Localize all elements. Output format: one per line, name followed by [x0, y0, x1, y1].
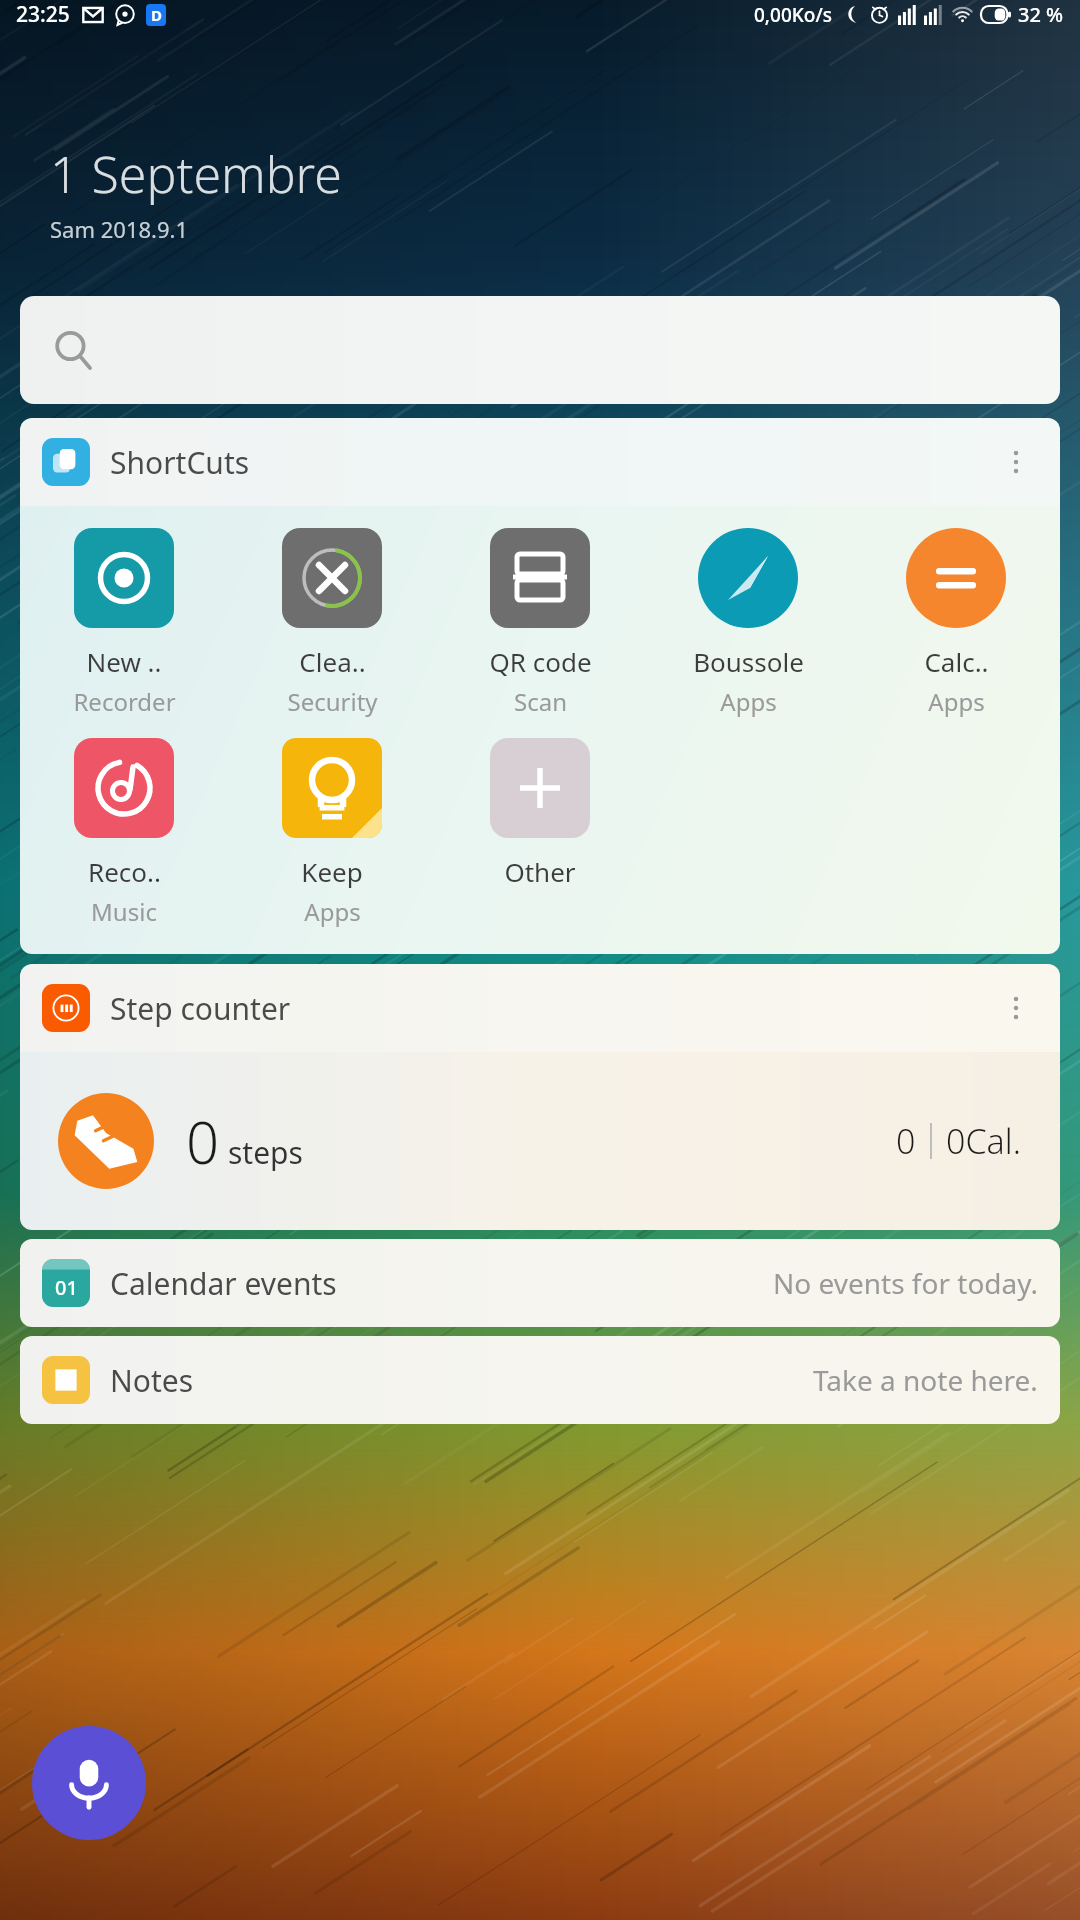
staticText: Boussole — [693, 644, 804, 679]
staticText: 0Cal. — [946, 1118, 1022, 1164]
button[interactable]: Reco.. — [20, 738, 228, 928]
button[interactable]: More options — [994, 986, 1038, 1030]
staticText: Scan — [514, 685, 567, 718]
staticText: 1 Septembre — [50, 140, 342, 208]
staticText: Apps — [304, 895, 361, 928]
staticText: Reco.. — [88, 854, 161, 889]
staticText: 0 — [186, 1102, 220, 1181]
staticText: D — [151, 5, 162, 25]
button[interactable]: More options — [994, 440, 1038, 484]
staticText: 0,00Ko/s — [754, 2, 832, 28]
button[interactable]: 0 — [20, 1052, 1060, 1230]
staticText: 23:25 — [16, 0, 70, 29]
staticText: Sam 2018.9.1 — [50, 214, 189, 244]
button[interactable]: Other — [436, 738, 644, 889]
button[interactable]: Voice assistant — [32, 1726, 146, 1840]
staticText: 32 % — [1018, 1, 1064, 28]
button[interactable]: Calc.. — [852, 528, 1060, 718]
staticText: 0 — [896, 1118, 916, 1164]
staticText: ShortCuts — [110, 442, 250, 483]
staticText: Step counter — [110, 988, 291, 1029]
staticText: steps — [228, 1132, 303, 1173]
button[interactable]: Notes — [20, 1336, 1060, 1424]
button[interactable]: Keep — [228, 738, 436, 928]
button[interactable] — [20, 296, 1060, 404]
button[interactable]: Step counter — [20, 964, 1060, 1052]
staticText: Notes — [110, 1360, 194, 1401]
staticText: 01 — [55, 1274, 78, 1301]
staticText: Recorder — [73, 685, 176, 718]
button[interactable]: QR code — [436, 528, 644, 718]
staticText: QR code — [489, 644, 592, 679]
button[interactable]: New .. — [20, 528, 228, 718]
staticText: Other — [504, 854, 576, 889]
button[interactable]: Boussole — [644, 528, 852, 718]
staticText: Music — [91, 895, 157, 928]
staticText: Take a note here. — [813, 1361, 1038, 1399]
staticText: No events for today. — [773, 1264, 1038, 1302]
staticText: Security — [287, 685, 378, 718]
staticText: Clea.. — [299, 644, 366, 679]
button[interactable]: ShortCuts — [20, 418, 1060, 506]
staticText: Calc.. — [924, 644, 989, 679]
button[interactable]: Clea.. — [228, 528, 436, 718]
staticText: Calendar events — [110, 1263, 337, 1304]
staticText: Apps — [928, 685, 985, 718]
staticText: New .. — [86, 644, 162, 679]
button[interactable]: 01 — [20, 1239, 1060, 1327]
staticText: Keep — [301, 854, 363, 889]
staticText: Apps — [720, 685, 777, 718]
